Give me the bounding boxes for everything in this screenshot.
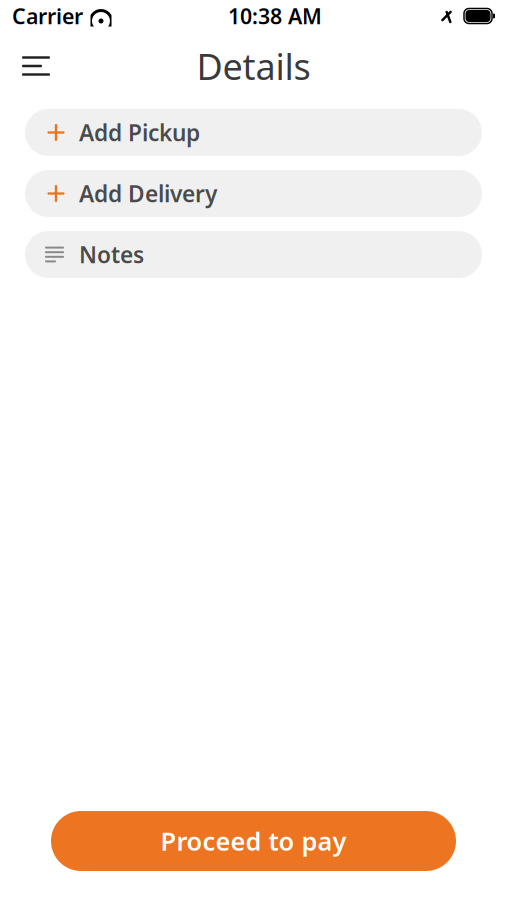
button[interactable]: Add Pickup xyxy=(25,109,482,156)
staticText: Add Pickup xyxy=(79,117,200,147)
staticText: Details xyxy=(196,42,310,90)
button[interactable]: Proceed to pay xyxy=(51,811,456,871)
staticText: Notes xyxy=(79,239,144,269)
staticText: Proceed to pay xyxy=(160,824,346,858)
staticText: 10:38 AM xyxy=(228,2,322,30)
staticText: Carrier xyxy=(12,2,83,30)
button[interactable]: Add Delivery xyxy=(25,170,482,217)
button[interactable]: Notes xyxy=(25,231,482,278)
staticText: Add Delivery xyxy=(79,178,217,208)
button[interactable]: Menu xyxy=(22,44,66,88)
